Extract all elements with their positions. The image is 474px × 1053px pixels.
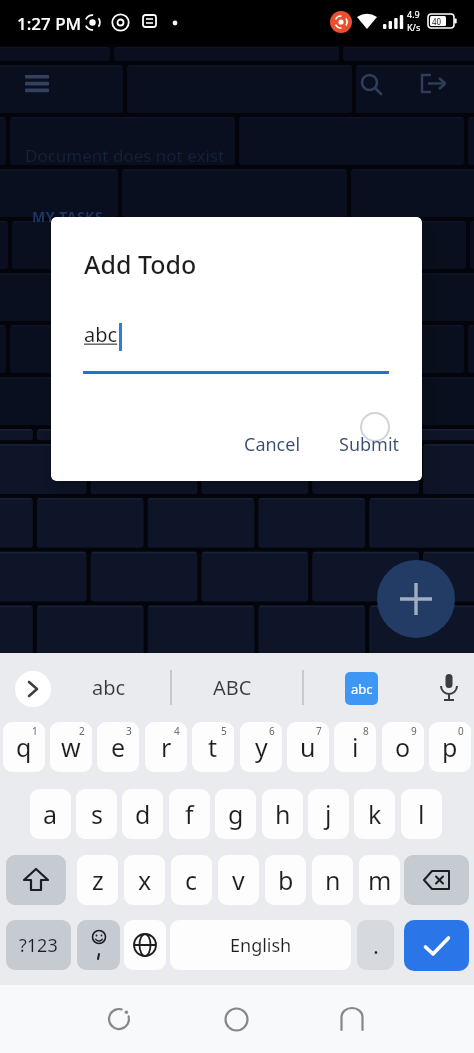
- staticText: c: [185, 863, 198, 897]
- button[interactable]: [15, 671, 51, 707]
- staticText: 1:27 PM: [17, 12, 82, 35]
- staticText: 4: [174, 724, 180, 738]
- staticText: abc: [351, 680, 373, 698]
- staticText: e: [111, 730, 126, 764]
- button[interactable]: Submit: [329, 427, 409, 461]
- staticText: u: [300, 730, 316, 764]
- staticText: x: [138, 863, 152, 897]
- button[interactable]: [328, 997, 376, 1041]
- button[interactable]: ?123: [6, 920, 71, 970]
- staticText: 3: [126, 724, 132, 738]
- staticText: f: [185, 797, 194, 831]
- staticText: MY TASKS: [32, 207, 104, 226]
- button[interactable]: abc: [62, 660, 155, 715]
- button[interactable]: [404, 855, 469, 905]
- button[interactable]: f: [169, 789, 210, 839]
- staticText: o: [395, 730, 411, 764]
- staticText: K/s: [407, 21, 421, 33]
- button[interactable]: Cancel: [235, 427, 309, 461]
- staticText: 8: [363, 724, 369, 738]
- staticText: 0: [458, 724, 464, 738]
- staticText: i: [352, 730, 359, 764]
- button[interactable]: [77, 920, 120, 970]
- staticText: g: [228, 797, 244, 831]
- button[interactable]: z: [77, 855, 118, 905]
- button[interactable]: p: [429, 722, 471, 772]
- staticText: j: [325, 797, 332, 831]
- staticText: Add Todo: [84, 247, 197, 281]
- button[interactable]: [17, 67, 57, 101]
- staticText: r: [161, 730, 172, 764]
- button[interactable]: [377, 560, 455, 638]
- staticText: ?123: [19, 933, 58, 958]
- button[interactable]: r: [145, 722, 187, 772]
- button[interactable]: v: [218, 855, 259, 905]
- staticText: Document does not exist: [25, 144, 225, 167]
- button[interactable]: k: [354, 789, 395, 839]
- staticText: abc: [84, 321, 118, 348]
- button[interactable]: q: [3, 722, 45, 772]
- button[interactable]: g: [215, 789, 256, 839]
- staticText: y: [255, 730, 268, 764]
- button[interactable]: s: [76, 789, 117, 839]
- staticText: 1: [32, 724, 38, 738]
- button[interactable]: a: [30, 789, 71, 839]
- staticText: ABC: [213, 674, 252, 701]
- staticText: 5: [221, 724, 227, 738]
- button[interactable]: [352, 65, 392, 103]
- button[interactable]: u: [287, 722, 329, 772]
- staticText: Cancel: [244, 432, 301, 457]
- staticText: abc: [92, 674, 126, 701]
- staticText: k: [368, 797, 382, 831]
- button[interactable]: [404, 920, 469, 971]
- button[interactable]: d: [122, 789, 163, 839]
- button[interactable]: b: [265, 855, 306, 905]
- staticText: 6: [269, 724, 275, 738]
- button[interactable]: English: [170, 920, 351, 970]
- button[interactable]: ABC: [186, 660, 279, 715]
- staticText: w: [61, 730, 81, 764]
- button[interactable]: [413, 65, 457, 103]
- button[interactable]: e: [97, 722, 139, 772]
- button[interactable]: m: [359, 855, 400, 905]
- staticText: v: [232, 863, 245, 897]
- button[interactable]: .: [357, 920, 394, 970]
- button[interactable]: [6, 855, 66, 905]
- staticText: b: [278, 863, 294, 897]
- staticText: h: [275, 797, 291, 831]
- staticText: a: [43, 797, 58, 831]
- button[interactable]: t: [192, 722, 234, 772]
- button[interactable]: abc: [345, 672, 378, 705]
- button[interactable]: j: [308, 789, 349, 839]
- staticText: t: [208, 730, 218, 764]
- staticText: n: [325, 863, 341, 897]
- staticText: d: [135, 797, 151, 831]
- button[interactable]: x: [124, 855, 165, 905]
- staticText: m: [368, 863, 392, 897]
- staticText: 9: [411, 724, 417, 738]
- button[interactable]: [430, 668, 468, 708]
- staticText: s: [91, 797, 103, 831]
- staticText: Submit: [339, 432, 400, 457]
- button[interactable]: [212, 997, 260, 1041]
- button[interactable]: y: [240, 722, 282, 772]
- button[interactable]: [95, 997, 143, 1041]
- button[interactable]: h: [262, 789, 303, 839]
- button[interactable]: n: [312, 855, 353, 905]
- staticText: English: [230, 933, 292, 958]
- button[interactable]: o: [382, 722, 424, 772]
- button[interactable]: i: [334, 722, 376, 772]
- staticText: 2: [79, 724, 85, 738]
- staticText: l: [418, 797, 425, 831]
- staticText: 40: [432, 16, 442, 27]
- button[interactable]: c: [171, 855, 212, 905]
- staticText: p: [442, 730, 458, 764]
- button[interactable]: [124, 920, 166, 970]
- staticText: 7: [316, 724, 322, 738]
- button[interactable]: l: [401, 789, 442, 839]
- staticText: q: [16, 730, 32, 764]
- staticText: z: [92, 863, 104, 897]
- staticText: .: [373, 930, 379, 960]
- staticText: 4.9: [407, 8, 420, 20]
- button[interactable]: w: [50, 722, 92, 772]
